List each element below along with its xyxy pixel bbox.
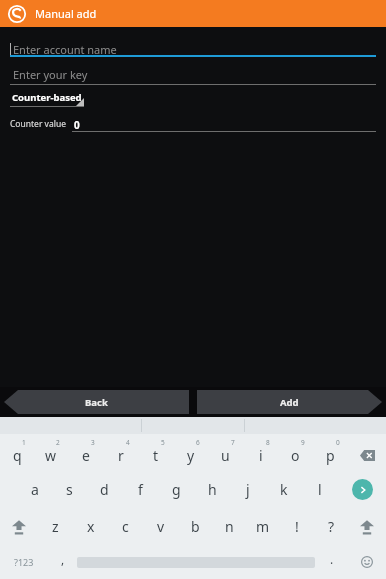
staticText: Enter account name: [13, 42, 117, 57]
staticText: w: [45, 446, 57, 465]
staticText: a: [31, 480, 39, 499]
button[interactable]: k: [266, 471, 302, 508]
staticText: .: [330, 551, 334, 567]
button[interactable]: Shift: [348, 508, 386, 545]
button[interactable]: 3: [68, 434, 103, 471]
staticText: Back: [85, 396, 108, 409]
button[interactable]: d: [87, 471, 122, 508]
button[interactable]: h: [194, 471, 230, 508]
staticText: c: [122, 517, 129, 536]
button[interactable]: Enter your key: [10, 64, 376, 85]
button[interactable]: !: [280, 508, 314, 545]
staticText: o: [291, 446, 300, 465]
button[interactable]: j: [230, 471, 266, 508]
staticText: i: [259, 446, 263, 465]
staticText: n: [225, 517, 234, 536]
staticText: f: [138, 480, 143, 499]
staticText: p: [326, 446, 335, 465]
staticText: x: [87, 517, 95, 536]
staticText: 4: [126, 438, 130, 447]
staticText: Manual add: [35, 6, 97, 21]
staticText: 0: [74, 118, 80, 130]
button[interactable]: z: [38, 508, 73, 545]
staticText: g: [172, 480, 181, 499]
staticText: u: [221, 446, 230, 465]
button[interactable]: Shift: [0, 508, 38, 545]
button[interactable]: n: [212, 508, 246, 545]
button[interactable]: ?: [314, 508, 348, 545]
staticText: t: [153, 446, 159, 465]
staticText: 0: [336, 438, 340, 447]
button[interactable]: m: [246, 508, 280, 545]
staticText: 6: [196, 438, 200, 447]
button[interactable]: Add: [197, 390, 382, 414]
button[interactable]: Enter account name: [10, 35, 376, 57]
staticText: 1: [22, 438, 26, 447]
button[interactable]: 0: [313, 434, 348, 471]
staticText: b: [191, 517, 200, 536]
button[interactable]: c: [108, 508, 143, 545]
button[interactable]: ,: [48, 545, 77, 579]
button[interactable]: ?123: [0, 545, 48, 579]
button[interactable]: 0: [72, 118, 376, 132]
staticText: h: [208, 480, 217, 499]
button[interactable]: x: [73, 508, 108, 545]
button[interactable]: 6: [173, 434, 208, 471]
staticText: 3: [91, 438, 95, 447]
button[interactable]: v: [143, 508, 178, 545]
button[interactable]: g: [158, 471, 194, 508]
button[interactable]: 8: [243, 434, 278, 471]
staticText: v: [157, 517, 165, 536]
staticText: ,: [61, 551, 65, 567]
staticText: r: [118, 446, 124, 465]
button[interactable]: Back: [4, 390, 189, 414]
staticText: 5: [161, 438, 165, 447]
button[interactable]: s: [52, 471, 87, 508]
staticText: 2: [56, 438, 60, 447]
staticText: l: [318, 480, 322, 499]
staticText: 8: [266, 438, 270, 447]
staticText: q: [13, 446, 22, 465]
staticText: y: [187, 446, 195, 465]
staticText: ?: [328, 517, 335, 536]
staticText: 7: [231, 438, 235, 447]
button[interactable]: 2: [34, 434, 68, 471]
button[interactable]: 4: [103, 434, 138, 471]
staticText: k: [280, 480, 288, 499]
staticText: s: [66, 480, 73, 499]
button[interactable]: Emoji: [348, 545, 386, 579]
button[interactable]: Backspace: [348, 434, 386, 471]
staticText: ?123: [14, 556, 34, 568]
button[interactable]: Enter: [338, 471, 386, 508]
staticText: d: [100, 480, 109, 499]
button[interactable]: Space: [77, 545, 315, 579]
button[interactable]: l: [302, 471, 338, 508]
staticText: Enter your key: [13, 67, 88, 82]
button[interactable]: Counter-based: [10, 91, 84, 107]
staticText: z: [52, 517, 59, 536]
staticText: !: [295, 517, 299, 536]
staticText: 9: [301, 438, 305, 447]
staticText: e: [82, 446, 90, 465]
button[interactable]: a: [17, 471, 52, 508]
button[interactable]: .: [315, 545, 348, 579]
button[interactable]: f: [122, 471, 158, 508]
button[interactable]: 5: [138, 434, 173, 471]
staticText: Counter value: [10, 118, 66, 130]
staticText: Add: [280, 396, 299, 409]
button[interactable]: b: [178, 508, 212, 545]
staticText: m: [256, 517, 270, 536]
button[interactable]: 1: [0, 434, 34, 471]
button[interactable]: 7: [208, 434, 243, 471]
button[interactable]: 9: [278, 434, 313, 471]
staticText: j: [246, 480, 250, 499]
staticText: Counter-based: [12, 91, 82, 104]
